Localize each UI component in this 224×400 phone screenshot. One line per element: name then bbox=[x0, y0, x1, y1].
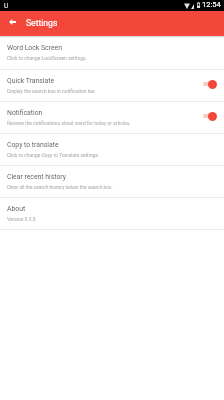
staticText: Clear all the search history below the s… bbox=[7, 184, 113, 190]
button[interactable]: Quick Translate bbox=[0, 70, 224, 102]
staticText: Quick Translate bbox=[7, 77, 55, 85]
staticText: Word Lock Screen bbox=[7, 44, 62, 52]
staticText: Notification bbox=[7, 109, 43, 117]
staticText: About bbox=[7, 205, 26, 213]
button[interactable]: About bbox=[0, 198, 224, 230]
button[interactable]: Word Lock Screen bbox=[0, 36, 224, 70]
staticText: 12:54 bbox=[202, 0, 221, 9]
staticText: Click to change Copy to Translate settin… bbox=[7, 152, 100, 158]
button[interactable]: Clear recent history bbox=[0, 166, 224, 198]
staticText: Version 3.3.0 bbox=[7, 216, 36, 222]
button[interactable]: Notification bbox=[0, 102, 224, 134]
button[interactable]: Toggle bbox=[203, 107, 224, 125]
staticText: Settings bbox=[26, 18, 58, 28]
staticText: Clear recent history bbox=[7, 173, 66, 181]
button[interactable]: Back bbox=[3, 13, 21, 31]
button[interactable]: Toggle bbox=[203, 75, 224, 93]
staticText: Copy to translate bbox=[7, 141, 59, 149]
staticText: U bbox=[4, 2, 9, 10]
staticText: Receive the notifications about word for… bbox=[7, 120, 131, 126]
staticText: Click to change LockScreen settings. bbox=[7, 55, 87, 61]
staticText: Display the search box in notification b… bbox=[7, 88, 96, 94]
button[interactable]: Copy to translate bbox=[0, 134, 224, 166]
